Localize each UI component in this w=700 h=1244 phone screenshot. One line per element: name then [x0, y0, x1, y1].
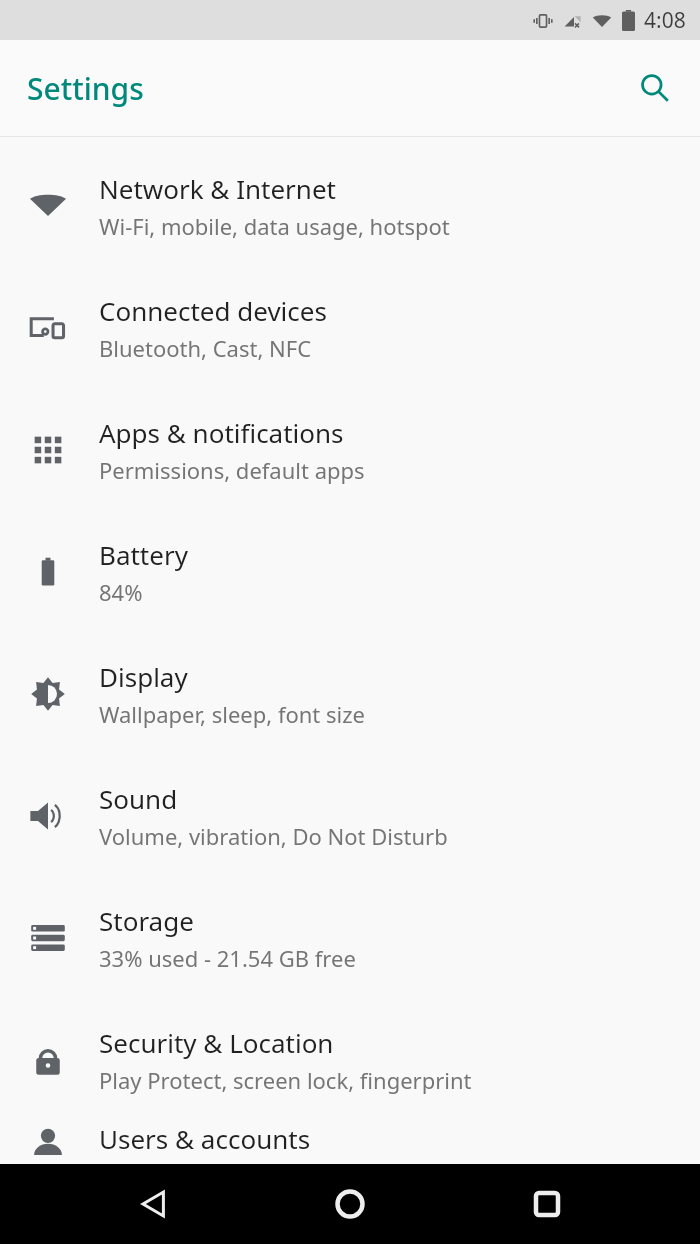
- staticText: Network & Internet: [99, 171, 336, 206]
- button[interactable]: Security & Location: [0, 999, 700, 1121]
- button[interactable]: Users & accounts: [0, 1121, 700, 1164]
- staticText: Users & accounts: [99, 1121, 311, 1156]
- staticText: 4:08: [644, 6, 686, 35]
- staticText: Play Protect, screen lock, fingerprint: [99, 1065, 472, 1095]
- button[interactable]: Connected devices: [0, 267, 700, 389]
- button[interactable]: Apps & notifications: [0, 389, 700, 511]
- staticText: Permissions, default apps: [99, 455, 365, 485]
- button[interactable]: Back: [125, 1174, 185, 1234]
- staticText: Wallpaper, sleep, font size: [99, 699, 365, 729]
- button[interactable]: Recent apps: [517, 1174, 577, 1234]
- button[interactable]: Battery: [0, 511, 700, 633]
- staticText: 33% used - 21.54 GB free: [99, 943, 356, 973]
- staticText: Security & Location: [99, 1025, 334, 1060]
- button[interactable]: Search: [627, 60, 683, 116]
- button[interactable]: Display: [0, 633, 700, 755]
- staticText: Apps & notifications: [99, 415, 344, 450]
- staticText: Storage: [99, 903, 194, 938]
- button[interactable]: Storage: [0, 877, 700, 999]
- staticText: Settings: [27, 68, 144, 109]
- staticText: Sound: [99, 781, 178, 816]
- staticText: Wi-Fi, mobile, data usage, hotspot: [99, 211, 450, 241]
- button[interactable]: Sound: [0, 755, 700, 877]
- staticText: Volume, vibration, Do Not Disturb: [99, 821, 448, 851]
- button[interactable]: Network & Internet: [0, 145, 700, 267]
- staticText: Battery: [99, 537, 188, 572]
- button[interactable]: Home: [320, 1174, 380, 1234]
- staticText: Display: [99, 659, 188, 694]
- staticText: 84%: [99, 577, 143, 607]
- staticText: Bluetooth, Cast, NFC: [99, 333, 312, 363]
- staticText: Connected devices: [99, 293, 327, 328]
